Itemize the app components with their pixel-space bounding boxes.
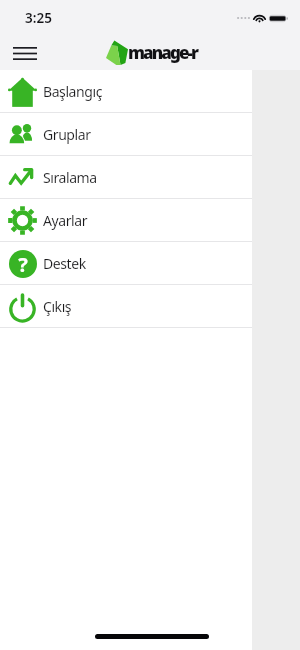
button[interactable]: Gruplar [0,113,252,155]
button[interactable]: Başlangıç [0,70,252,112]
staticText: manage-r [128,41,198,64]
button[interactable]: Ayarlar [0,199,252,241]
staticText: Destek [43,254,86,273]
staticText: 3:25 [25,9,52,27]
button[interactable]: Çıkış [0,285,252,327]
staticText: Çıkış [43,297,72,316]
button[interactable]: Open navigation menu [6,34,44,72]
staticText: Sıralama [43,168,97,187]
staticText: Ayarlar [43,211,88,230]
staticText: Gruplar [43,125,91,144]
staticText: ? [18,251,28,278]
button[interactable]: ? [0,242,252,284]
staticText: Başlangıç [43,82,102,101]
button[interactable]: Sıralama [0,156,252,198]
